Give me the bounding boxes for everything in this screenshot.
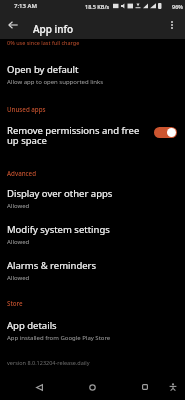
staticText: 96% (172, 3, 183, 10)
button[interactable]: Display over other apps (0, 187, 185, 210)
button[interactable]: App details (0, 319, 185, 342)
staticText: Allowed (7, 202, 30, 210)
staticText: Allowed (7, 238, 30, 246)
staticText: Alarms & reminders (7, 259, 97, 272)
staticText: App info (33, 22, 74, 36)
button[interactable]: Open by default (0, 63, 185, 86)
button[interactable]: More options (159, 12, 185, 38)
staticText: Allowed (7, 274, 30, 282)
button[interactable]: Alarms & reminders (0, 259, 185, 282)
staticText: 7:13 AM (14, 2, 37, 10)
staticText: 18.5 KB/s (85, 3, 110, 10)
staticText: Open by default (7, 63, 79, 76)
staticText: Unused apps (7, 105, 46, 113)
button[interactable]: Back (28, 376, 50, 398)
staticText: Store (7, 299, 23, 307)
button[interactable]: Accessibility menu (162, 376, 184, 398)
staticText: Modify system settings (7, 223, 110, 236)
staticText: Allow app to open supported links (7, 78, 104, 86)
button[interactable]: Home (81, 376, 103, 398)
button[interactable]: Remove permissions and free up space (0, 124, 185, 147)
staticText: Advanced (7, 169, 36, 177)
button[interactable]: Recent apps (134, 376, 156, 398)
staticText: version 8.0.123204-release.daily (7, 359, 90, 366)
staticText: 0% use since last full charge (7, 39, 80, 46)
button[interactable]: Modify system settings (0, 223, 185, 246)
staticText: App installed from Google Play Store (7, 334, 111, 342)
staticText: Remove permissions and free up space (7, 124, 151, 147)
staticText: App details (7, 319, 57, 332)
button[interactable]: Navigate up (0, 12, 26, 38)
staticText: Display over other apps (7, 187, 113, 200)
